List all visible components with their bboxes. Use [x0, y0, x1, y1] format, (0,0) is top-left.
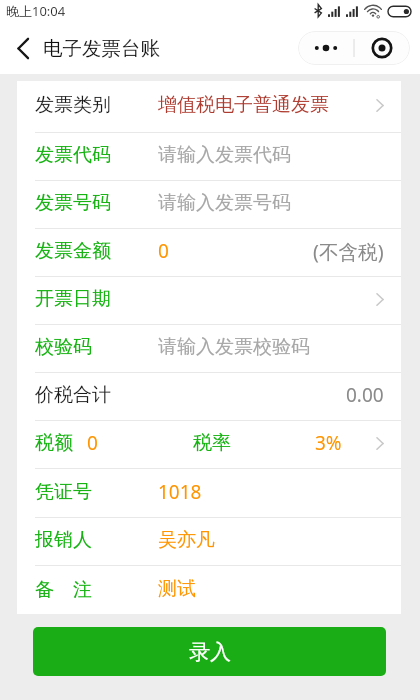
staticText: 价税合计 [35, 383, 111, 407]
staticText: 请输入发票号码 [158, 191, 291, 215]
staticText: 录入 [189, 639, 231, 665]
staticText: 凭证号 [35, 480, 92, 504]
staticText: 吴亦凡 [158, 528, 215, 552]
staticText: 测试 [158, 577, 196, 601]
button[interactable]: More options [298, 31, 410, 65]
staticText: 电子发票台账 [43, 36, 160, 61]
button[interactable]: 录入 [33, 627, 386, 676]
button[interactable]: 价税合计 [17, 373, 401, 420]
staticText: 报销人 [35, 528, 92, 552]
staticText: 开票日期 [35, 287, 111, 311]
staticText: 0.00 [346, 382, 384, 408]
button[interactable]: 凭证号 [17, 469, 401, 517]
button[interactable]: 备 注 [17, 566, 401, 614]
staticText: 发票金额 [35, 239, 111, 263]
staticText: 税额 [35, 431, 73, 455]
staticText: 税率 [193, 431, 231, 455]
button[interactable]: 发票金额 [17, 229, 401, 276]
staticText: 0 [87, 430, 98, 456]
button[interactable]: 开票日期 [17, 277, 401, 324]
staticText: 发票代码 [35, 143, 111, 167]
staticText: 校验码 [35, 335, 92, 359]
button[interactable]: 校验码 [17, 325, 401, 372]
button[interactable]: 税额 [17, 421, 401, 468]
staticText: (不含税) [313, 238, 384, 265]
button[interactable]: 发票代码 [17, 133, 401, 180]
staticText: 增值税电子普通发票 [158, 93, 329, 117]
staticText: 1018 [158, 479, 202, 505]
button[interactable]: 发票类别 [17, 81, 401, 132]
staticText: 发票类别 [35, 93, 111, 117]
staticText: 发票号码 [35, 191, 111, 215]
staticText: 0 [158, 238, 169, 264]
staticText: 备 注 [35, 576, 92, 602]
staticText: 3% [315, 430, 342, 456]
button[interactable]: 报销人 [17, 518, 401, 565]
button[interactable]: 发票号码 [17, 181, 401, 228]
staticText: 晚上10:04 [6, 2, 66, 20]
staticText: 请输入发票代码 [158, 143, 291, 167]
staticText: 请输入发票校验码 [158, 335, 310, 359]
button[interactable]: Back [17, 38, 29, 59]
